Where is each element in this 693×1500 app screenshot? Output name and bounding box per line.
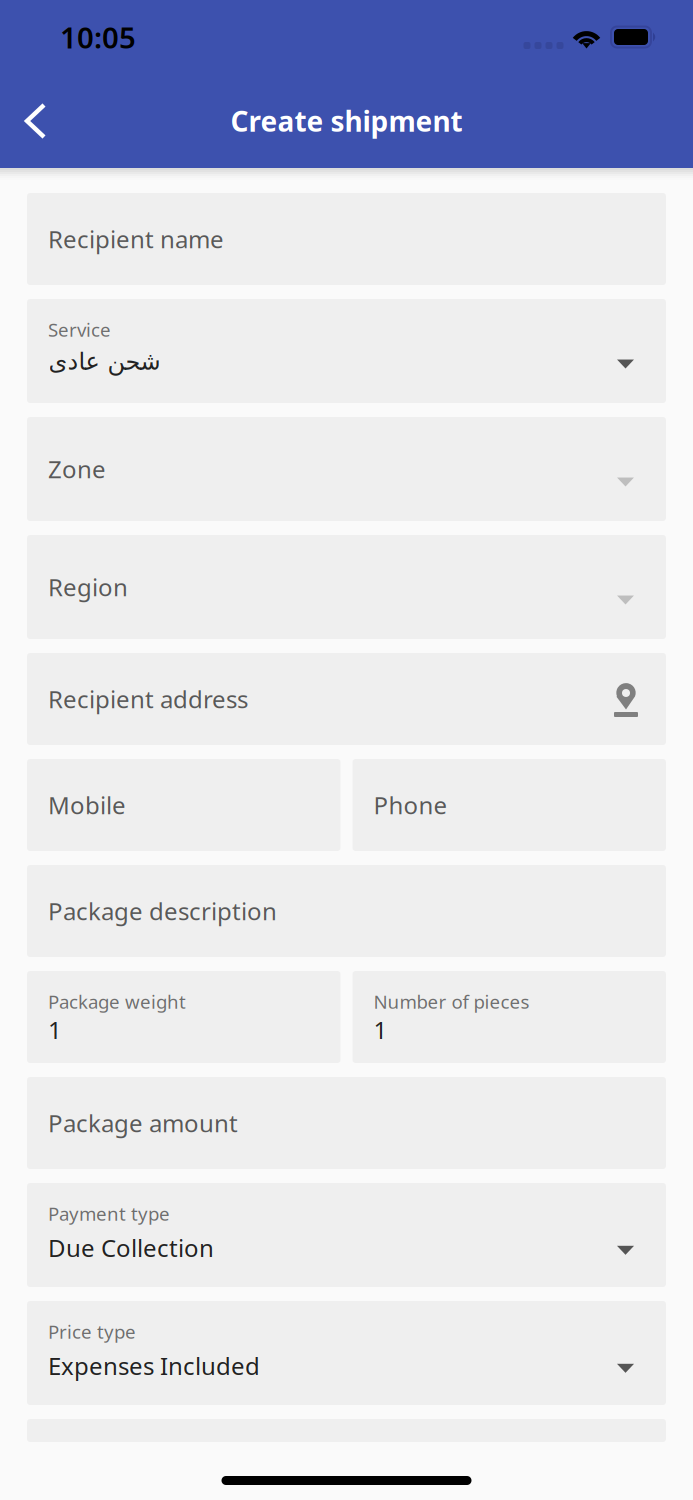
button[interactable]: Number of pieces <box>352 971 666 1063</box>
button[interactable]: Service <box>27 299 666 403</box>
staticText: Phone <box>373 789 447 821</box>
staticText: Zone <box>48 453 106 485</box>
staticText: Recipient name <box>48 223 224 255</box>
staticText: Service <box>48 317 111 342</box>
button[interactable]: Package amount <box>27 1077 666 1169</box>
staticText: Price type <box>48 1319 136 1344</box>
button[interactable]: Package description <box>27 865 666 957</box>
staticText: Number of pieces <box>373 989 529 1014</box>
staticText: Due Collection <box>48 1232 214 1264</box>
button[interactable]: Recipient name <box>27 193 666 285</box>
button[interactable]: Zone <box>27 417 666 521</box>
staticText: 1 <box>373 1014 387 1046</box>
button[interactable]: Back <box>7 92 65 150</box>
staticText: Create shipment <box>230 102 462 140</box>
staticText: 1 <box>48 1014 62 1046</box>
staticText: 10:05 <box>60 17 136 56</box>
staticText: Recipient address <box>48 683 248 715</box>
button[interactable]: Mobile <box>27 759 340 851</box>
button[interactable]: Region <box>27 535 666 639</box>
staticText: Expenses Included <box>48 1350 260 1382</box>
staticText: Package weight <box>48 989 186 1014</box>
staticText: Package amount <box>48 1107 238 1139</box>
button[interactable]: Payment type <box>27 1183 666 1287</box>
staticText: Region <box>48 571 128 603</box>
staticText: Payment type <box>48 1201 170 1226</box>
button[interactable]: Phone <box>352 759 666 851</box>
staticText: Mobile <box>48 789 126 821</box>
button[interactable]: Recipient address <box>27 653 666 745</box>
button[interactable]: Price type <box>27 1301 666 1405</box>
button[interactable]: Package weight <box>27 971 340 1063</box>
staticText: Package description <box>48 895 277 927</box>
staticText: شحن عادى <box>48 348 160 375</box>
